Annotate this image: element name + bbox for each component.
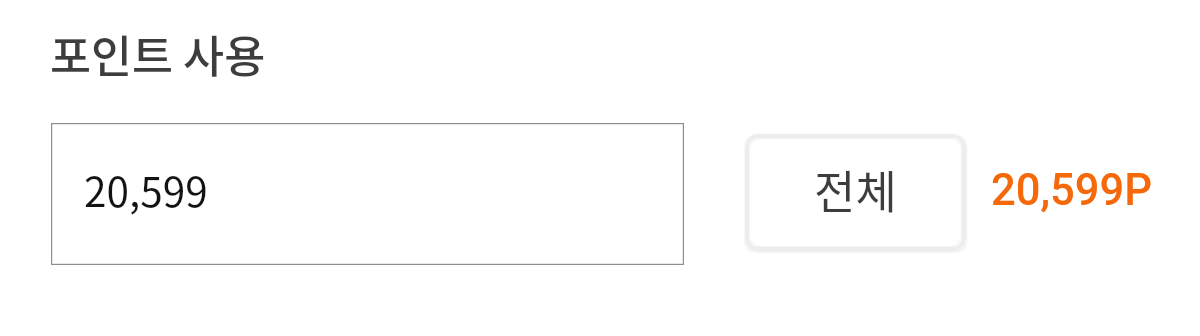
staticText: 포인트 사용 [50, 21, 266, 86]
button[interactable]: 20,599 [51, 123, 684, 265]
staticText: 20,599P [991, 165, 1153, 216]
staticText: 20,599 [84, 160, 208, 219]
staticText: 전체 [814, 157, 897, 222]
button[interactable]: 전체 포인트 사용 [745, 134, 966, 251]
